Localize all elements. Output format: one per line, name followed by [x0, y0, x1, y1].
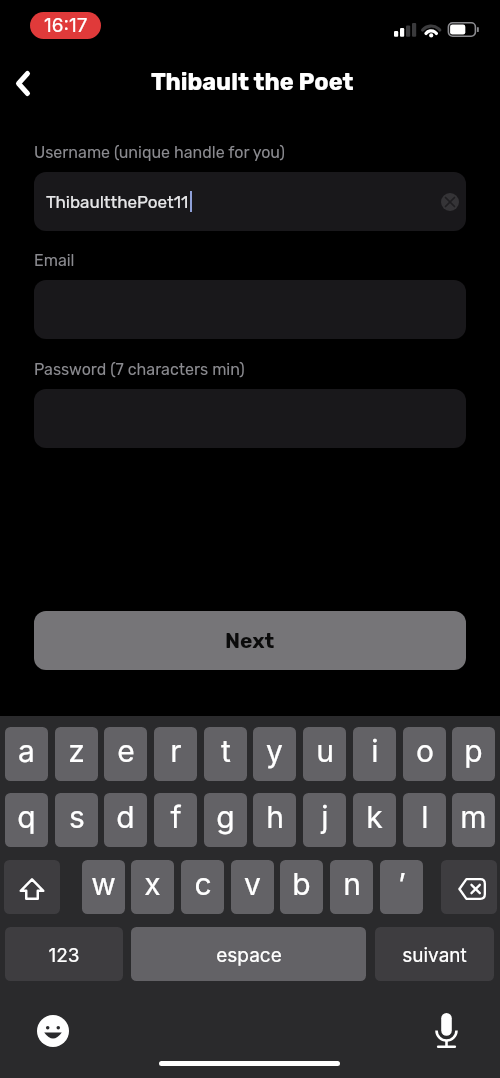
button[interactable]: z — [55, 727, 98, 781]
staticText: e — [117, 733, 135, 769]
staticText: a — [18, 733, 35, 769]
staticText: Thibault the Poet — [151, 68, 354, 96]
button[interactable]: o — [403, 727, 446, 781]
button[interactable]: j — [303, 793, 346, 847]
staticText: y — [266, 733, 283, 769]
staticText: 16:17 — [44, 14, 88, 37]
button[interactable]: b — [280, 860, 323, 914]
button[interactable]: Next — [34, 611, 466, 670]
staticText: w — [91, 866, 116, 902]
button[interactable]: 123 — [5, 927, 123, 981]
staticText: r — [170, 733, 182, 769]
staticText: ThibaultthePoet11 — [46, 192, 189, 212]
staticText: j — [321, 799, 329, 835]
staticText: s — [69, 799, 85, 835]
staticText: h — [266, 799, 284, 835]
button[interactable]: q — [5, 793, 48, 847]
button[interactable]: Dictation — [435, 1012, 458, 1048]
button[interactable]: Emoji keyboard — [36, 1014, 70, 1048]
button[interactable]: h — [253, 793, 296, 847]
staticText: z — [68, 733, 85, 769]
button[interactable]: v — [231, 860, 274, 914]
button[interactable]: w — [82, 860, 125, 914]
button[interactable]: n — [330, 860, 373, 914]
button[interactable]: t — [204, 727, 247, 781]
button[interactable]: k — [353, 793, 396, 847]
staticText: u — [316, 733, 334, 769]
staticText: x — [144, 866, 161, 902]
staticText: Username (unique handle for you) — [34, 143, 285, 162]
button[interactable]: ’ — [380, 860, 423, 914]
button[interactable]: r — [154, 727, 197, 781]
staticText: t — [221, 733, 231, 769]
button[interactable]: m — [452, 793, 495, 847]
button[interactable]: i — [353, 727, 396, 781]
button[interactable]: Shift — [4, 860, 60, 914]
button[interactable]: g — [204, 793, 247, 847]
staticText: f — [170, 799, 182, 835]
staticText: 123 — [48, 944, 80, 967]
staticText: o — [416, 733, 434, 769]
staticText: espace — [216, 944, 282, 967]
staticText: l — [421, 799, 429, 835]
staticText: p — [464, 733, 483, 769]
staticText: k — [366, 799, 383, 835]
button[interactable]: Backspace — [441, 860, 497, 914]
button[interactable]: espace — [131, 927, 366, 981]
staticText: d — [116, 799, 135, 835]
button[interactable]: s — [55, 793, 98, 847]
staticText: Next — [225, 628, 275, 653]
staticText: b — [292, 866, 311, 902]
staticText: Password (7 characters min) — [34, 360, 245, 379]
button[interactable]: l — [403, 793, 446, 847]
staticText: v — [244, 866, 261, 902]
staticText: q — [17, 799, 36, 835]
button[interactable]: suivant — [375, 927, 494, 981]
staticText: i — [371, 733, 379, 769]
button[interactable]: y — [253, 727, 296, 781]
button[interactable]: d — [104, 793, 147, 847]
button[interactable]: Back — [0, 60, 46, 107]
button[interactable]: e — [104, 727, 147, 781]
staticText: Email — [34, 251, 75, 270]
staticText: m — [460, 799, 487, 835]
staticText: suivant — [402, 944, 467, 967]
button[interactable]: ThibaultthePoet11 — [34, 172, 466, 231]
button[interactable]: c — [181, 860, 224, 914]
staticText: c — [194, 866, 212, 902]
staticText: n — [343, 866, 361, 902]
staticText: g — [216, 799, 235, 835]
button[interactable]: p — [452, 727, 495, 781]
button[interactable]: x — [131, 860, 174, 914]
button[interactable]: f — [154, 793, 197, 847]
staticText: ’ — [398, 866, 406, 902]
button[interactable]: u — [303, 727, 346, 781]
button[interactable]: a — [5, 727, 48, 781]
button[interactable]: Clear text — [437, 189, 463, 215]
